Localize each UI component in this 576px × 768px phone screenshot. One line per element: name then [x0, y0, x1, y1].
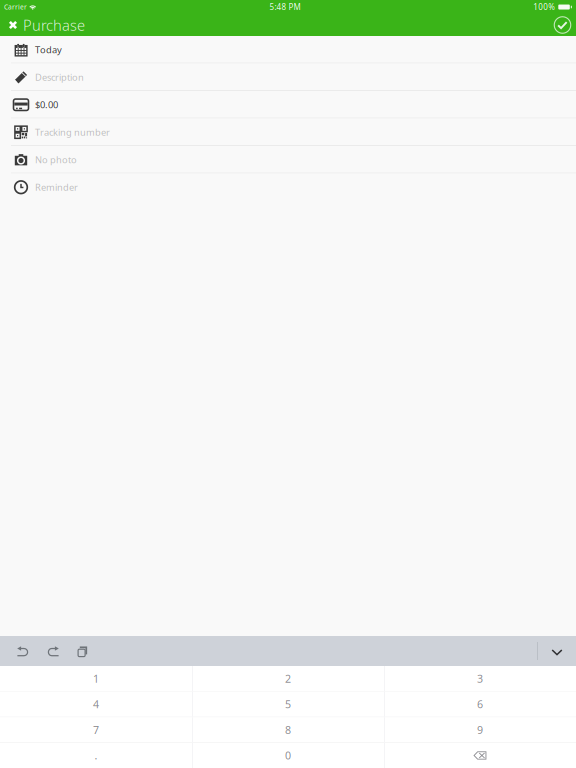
staticText: Description: [35, 71, 84, 83]
staticText: .: [94, 748, 97, 763]
button[interactable]: 7: [0, 717, 192, 742]
staticText: 1: [93, 671, 99, 686]
staticText: 6: [477, 697, 483, 711]
button[interactable]: Paste: [68, 637, 98, 665]
button[interactable]: 2: [192, 666, 384, 691]
button[interactable]: Redo: [38, 637, 68, 665]
staticText: $0.00: [35, 99, 58, 111]
staticText: 100%: [533, 2, 555, 12]
staticText: 0: [285, 748, 291, 763]
button[interactable]: No photo: [0, 146, 576, 173]
staticText: No photo: [35, 154, 77, 166]
staticText: 5:48 PM: [270, 2, 301, 12]
button[interactable]: 0: [192, 743, 384, 768]
button[interactable]: 3: [384, 666, 576, 691]
button[interactable]: Description: [0, 63, 576, 91]
staticText: 7: [93, 723, 99, 737]
staticText: Reminder: [35, 181, 78, 193]
staticText: 4: [93, 697, 99, 711]
staticText: 2: [285, 671, 291, 686]
button[interactable]: Close: [3, 14, 23, 36]
button[interactable]: Today: [0, 36, 576, 63]
button[interactable]: $0.00: [0, 91, 576, 118]
staticText: 5: [285, 697, 291, 711]
button[interactable]: 8: [192, 717, 384, 742]
button[interactable]: 6: [384, 692, 576, 717]
staticText: 8: [285, 723, 291, 737]
button[interactable]: 9: [384, 717, 576, 742]
staticText: Tracking number: [35, 126, 110, 138]
button[interactable]: 5: [192, 692, 384, 717]
button[interactable]: Reminder: [0, 173, 576, 201]
staticText: 3: [477, 671, 483, 686]
button[interactable]: Save: [549, 14, 576, 36]
staticText: Purchase: [23, 15, 85, 35]
button[interactable]: 1: [0, 666, 192, 691]
button[interactable]: [384, 743, 576, 768]
button[interactable]: 4: [0, 692, 192, 717]
staticText: 9: [477, 723, 483, 737]
staticText: Today: [35, 44, 62, 56]
staticText: Carrier: [4, 3, 27, 11]
button[interactable]: Tracking number: [0, 118, 576, 146]
button[interactable]: Dismiss keyboard: [538, 637, 576, 665]
button[interactable]: Undo: [8, 637, 38, 665]
